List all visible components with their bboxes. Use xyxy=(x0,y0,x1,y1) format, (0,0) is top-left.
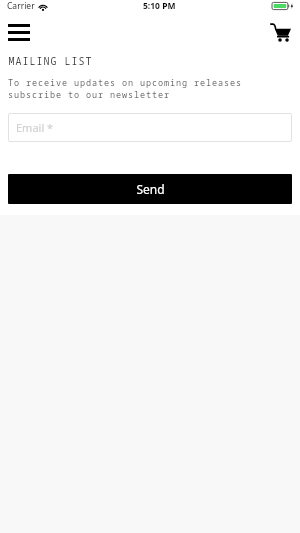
staticText: MAILING LIST xyxy=(8,54,92,68)
staticText: 5:10 PM xyxy=(143,0,176,12)
button[interactable]: Shopping cart xyxy=(263,15,297,49)
staticText: Send xyxy=(136,181,165,197)
staticText: Email * xyxy=(16,120,54,135)
staticText: To receive updates on upcoming releases … xyxy=(8,77,292,101)
staticText: Carrier xyxy=(7,0,35,12)
button[interactable]: Email * xyxy=(8,113,292,142)
button[interactable]: Open menu xyxy=(2,15,36,49)
button[interactable]: Send xyxy=(8,174,292,204)
